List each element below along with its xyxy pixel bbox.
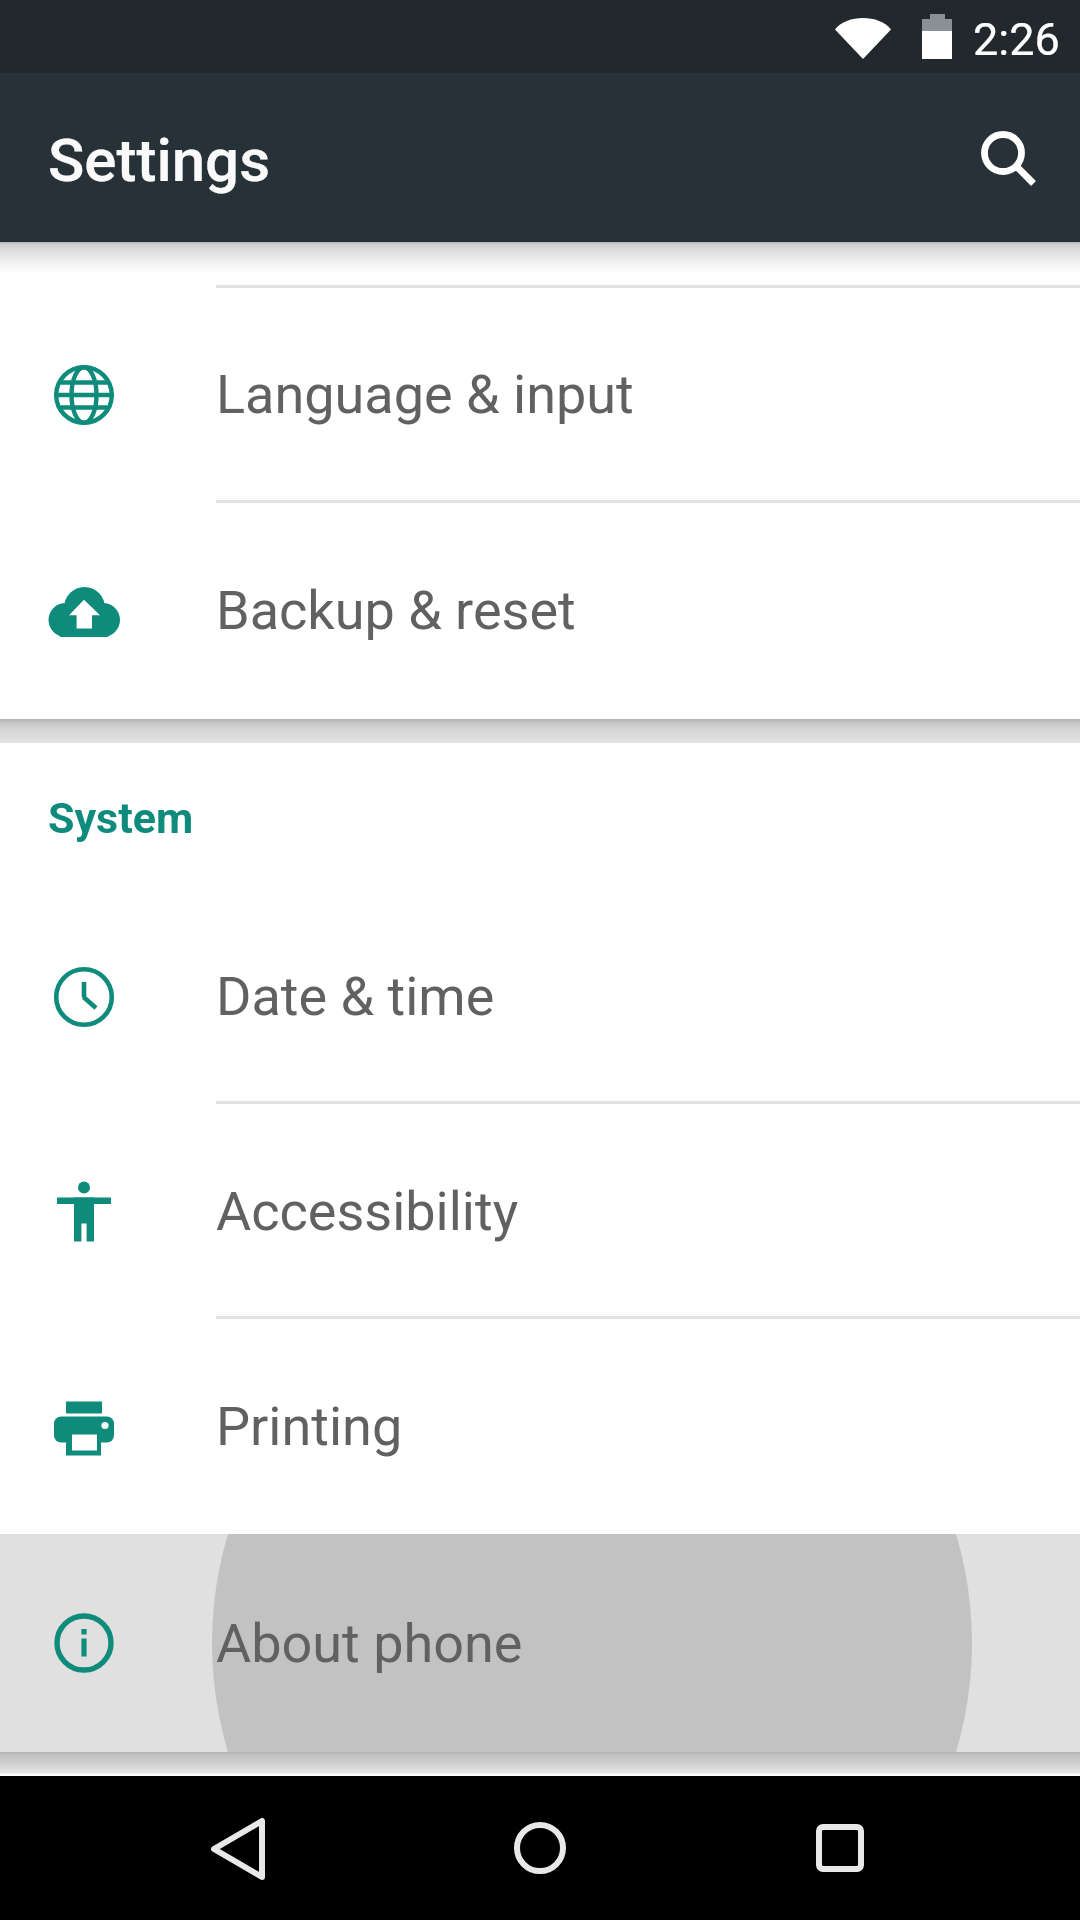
staticText: Settings [48, 125, 271, 195]
staticText: About phone [216, 1612, 523, 1675]
button[interactable]: Printing [0, 1319, 1080, 1534]
button[interactable]: Date & time [0, 889, 1080, 1104]
staticText: Date & time [216, 965, 495, 1028]
button[interactable]: Home [468, 1776, 612, 1920]
button[interactable]: About phone [0, 1534, 1080, 1752]
button[interactable]: Language & input [0, 287, 1080, 502]
button[interactable]: Recent apps [768, 1776, 912, 1920]
staticText: Language & input [216, 363, 634, 426]
staticText: Accessibility [216, 1180, 519, 1243]
staticText: System [48, 793, 194, 843]
staticText: Printing [216, 1395, 403, 1458]
button[interactable]: Search [959, 73, 1069, 242]
button[interactable]: Accessibility [0, 1104, 1080, 1319]
staticText: Backup & reset [216, 579, 576, 642]
staticText: 2:26 [973, 13, 1060, 66]
button[interactable]: Back [168, 1776, 312, 1920]
button[interactable]: Backup & reset [0, 502, 1080, 719]
